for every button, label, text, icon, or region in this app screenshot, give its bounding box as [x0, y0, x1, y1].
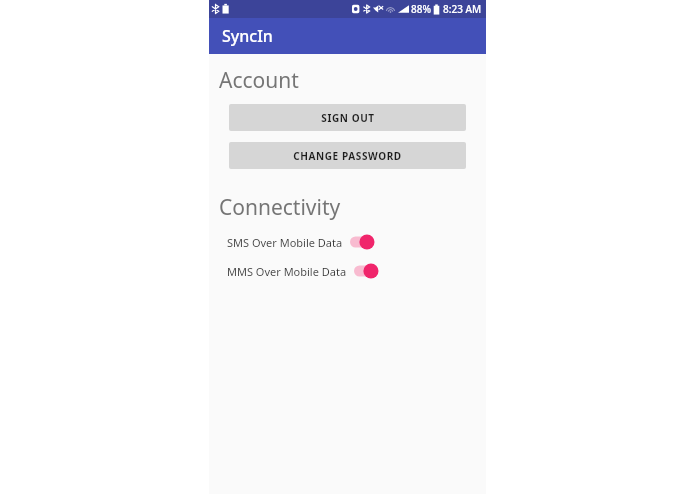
staticText: 8:23 AM	[443, 2, 482, 16]
button[interactable]: Toggle	[354, 262, 382, 280]
button[interactable]: CHANGE PASSWORD	[229, 142, 466, 169]
staticText: MMS Over Mobile Data	[227, 264, 347, 279]
staticText: 88%	[411, 2, 431, 16]
button[interactable]: Toggle	[350, 233, 378, 251]
button[interactable]: MMS Over Mobile Data	[209, 260, 486, 282]
staticText: CHANGE PASSWORD	[293, 149, 402, 163]
staticText: Connectivity	[219, 193, 341, 222]
button[interactable]: SMS Over Mobile Data	[209, 231, 486, 253]
staticText: SMS Over Mobile Data	[227, 235, 343, 250]
staticText: Account	[219, 66, 299, 95]
button[interactable]: SIGN OUT	[229, 104, 466, 131]
staticText: SyncIn	[222, 25, 273, 47]
staticText: SIGN OUT	[321, 111, 375, 125]
